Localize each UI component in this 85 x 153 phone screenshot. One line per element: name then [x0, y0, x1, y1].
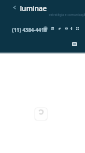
button[interactable]: YouTube	[64, 26, 69, 31]
button[interactable]: Menu	[75, 26, 80, 31]
staticText: estratégia e comunicação	[49, 13, 85, 17]
button[interactable]: Twitter	[57, 26, 62, 31]
staticText: (11) 4384-4418	[12, 27, 47, 34]
button[interactable]: Open menu	[72, 42, 77, 46]
button[interactable]: Facebook	[69, 26, 74, 31]
button[interactable]: Instagram	[43, 26, 48, 31]
button[interactable]: luminae home	[13, 6, 16, 9]
staticText: luminae	[20, 4, 47, 14]
button[interactable]: LinkedIn	[50, 26, 55, 31]
